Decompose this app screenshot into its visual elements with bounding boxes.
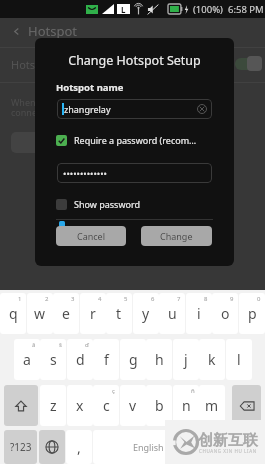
staticText: q — [9, 304, 18, 323]
staticText: y — [142, 304, 150, 323]
staticText: 5 — [124, 295, 128, 303]
staticText: c — [103, 396, 110, 415]
staticText: ç — [112, 387, 115, 395]
staticText: s — [50, 350, 57, 369]
button[interactable]: j — [173, 339, 199, 380]
staticText: b — [155, 396, 164, 415]
button[interactable]: w — [27, 293, 53, 334]
button[interactable]: n — [173, 385, 199, 426]
button[interactable] — [11, 132, 101, 153]
staticText: ?123 — [10, 440, 32, 454]
staticText: x — [76, 396, 84, 415]
staticText: z — [50, 396, 57, 415]
staticText: . — [216, 438, 220, 457]
staticText: ••••••••••••• — [63, 167, 107, 179]
button[interactable]: Shift — [4, 385, 38, 426]
staticText: r — [90, 304, 96, 323]
staticText: m — [205, 396, 219, 415]
button[interactable]: , — [66, 430, 92, 464]
staticText: 4 — [98, 295, 102, 303]
staticText: u — [168, 304, 177, 323]
staticText: i — [197, 304, 201, 323]
staticText: p — [248, 304, 257, 323]
staticText: Hotspot — [28, 22, 77, 40]
button[interactable]: a — [14, 339, 40, 380]
staticText: 7 — [177, 295, 181, 303]
button[interactable]: p — [239, 293, 265, 334]
button[interactable]: y — [133, 293, 159, 334]
button[interactable]: d — [67, 339, 93, 380]
button[interactable]: m — [199, 385, 225, 426]
staticText: 8 — [204, 295, 208, 303]
staticText: Change — [160, 230, 193, 242]
button[interactable]: Require a password (recom… — [56, 134, 197, 146]
staticText: Change Hotspot Setup — [35, 52, 234, 69]
button[interactable]: h — [146, 339, 172, 380]
staticText: Show password — [74, 198, 140, 210]
button[interactable]: s — [40, 339, 66, 380]
button[interactable]: English — [93, 430, 203, 464]
button[interactable]: c — [93, 385, 119, 426]
button[interactable]: . — [205, 430, 231, 464]
staticText: ñ — [191, 387, 195, 395]
button[interactable]: Hotspot — [12, 20, 265, 42]
button[interactable]: v — [120, 385, 146, 426]
staticText: 2 — [45, 295, 49, 303]
button[interactable]: Change — [141, 226, 212, 246]
staticText: (100%) — [193, 3, 223, 16]
button[interactable]: x — [67, 385, 93, 426]
staticText: Cancel — [77, 230, 106, 242]
button[interactable]: r — [80, 293, 106, 334]
staticText: 创新互联 — [198, 431, 258, 450]
button[interactable]: g — [120, 339, 146, 380]
button[interactable]: f — [93, 339, 119, 380]
staticText: 3 — [71, 295, 75, 303]
button[interactable]: e — [53, 293, 79, 334]
button[interactable]: q — [0, 293, 26, 334]
button[interactable]: l — [226, 339, 252, 380]
staticText: Hotspot name — [56, 81, 124, 94]
staticText: 9 — [230, 295, 234, 303]
staticText: 0 — [257, 295, 261, 303]
staticText: ď — [85, 341, 89, 349]
staticText: w — [34, 304, 46, 323]
button[interactable]: Change language — [39, 430, 65, 464]
staticText: h — [155, 350, 164, 369]
staticText: CHUANG XIN HU LIAN — [199, 448, 257, 454]
button[interactable]: z — [40, 385, 66, 426]
staticText: 1 — [18, 295, 22, 303]
button[interactable]: Show password — [56, 198, 140, 210]
staticText: o — [221, 304, 230, 323]
button[interactable]: t — [106, 293, 132, 334]
staticText: j — [184, 350, 188, 369]
staticText: k — [208, 350, 216, 369]
staticText: 6:58 PM — [228, 3, 264, 16]
staticText: v — [129, 396, 137, 415]
staticText: t — [116, 304, 122, 323]
button[interactable]: ••••••••••••• — [57, 163, 212, 183]
button[interactable]: Cancel — [56, 226, 126, 246]
button[interactable]: o — [212, 293, 238, 334]
staticText: ǎ — [32, 341, 36, 349]
button[interactable]: u — [159, 293, 185, 334]
staticText: f — [104, 350, 109, 369]
button[interactable]: b — [146, 385, 172, 426]
staticText: e — [62, 304, 70, 323]
button[interactable]: i — [186, 293, 212, 334]
button[interactable]: zhangrelay — [57, 99, 212, 119]
button[interactable]: Change language — [232, 430, 261, 464]
staticText: a — [23, 350, 31, 369]
staticText: l — [237, 350, 241, 369]
button[interactable]: k — [199, 339, 225, 380]
button[interactable]: Backspace — [232, 385, 261, 426]
staticText: English — [133, 441, 164, 453]
staticText: Require a password (recom… — [74, 134, 197, 146]
staticText: d — [76, 350, 85, 369]
staticText: zhangrelay — [64, 103, 111, 115]
staticText: Hotspot — [11, 57, 53, 72]
button[interactable]: ?123 — [4, 430, 37, 464]
staticText: connect other devices — [11, 106, 104, 118]
staticText: n — [182, 396, 191, 415]
staticText: When Hotspot is on you can — [11, 96, 130, 108]
staticText: g — [129, 350, 138, 369]
